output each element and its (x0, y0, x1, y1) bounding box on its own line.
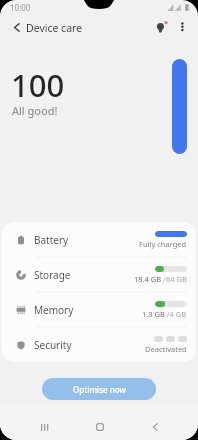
staticText: 1.3 GB /4 GB (142, 309, 187, 319)
staticText: 10:00 (10, 2, 31, 13)
button[interactable]: More options (169, 14, 194, 39)
staticText: Storage (34, 268, 71, 282)
staticText: Memory (34, 303, 74, 317)
button[interactable]: Tips (148, 14, 174, 40)
staticText: Optimise now (73, 384, 126, 395)
staticText: Device care (26, 21, 83, 35)
staticText: Battery (34, 233, 69, 247)
staticText: Security (34, 338, 72, 352)
staticText: Fully charged (139, 239, 187, 249)
staticText: Deactivated (145, 344, 187, 354)
button[interactable]: Recents (28, 411, 60, 440)
button[interactable]: Memory (2, 292, 196, 327)
staticText: 100 (11, 64, 65, 106)
button[interactable]: Home (84, 411, 116, 440)
button[interactable]: Security (2, 327, 196, 362)
staticText: 18.4 GB /64 GB (134, 274, 187, 284)
staticText: All good! (12, 103, 58, 118)
button[interactable]: Back (3, 14, 30, 40)
button[interactable]: Back (139, 411, 171, 440)
button[interactable]: Storage (2, 257, 196, 292)
button[interactable]: Battery (2, 222, 196, 257)
button[interactable]: Optimise now (42, 378, 156, 400)
